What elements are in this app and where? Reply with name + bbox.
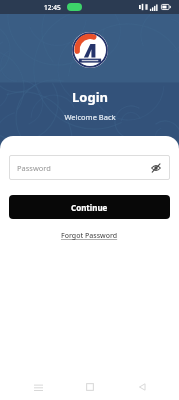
- staticText: Continue: [71, 202, 108, 213]
- staticText: 12:45: [44, 3, 61, 12]
- button[interactable]: Show password: [149, 161, 162, 174]
- button[interactable]: Recents: [12, 374, 64, 400]
- button[interactable]: Back: [116, 374, 168, 400]
- staticText: Login: [72, 88, 108, 106]
- button[interactable]: Forgot Password: [58, 228, 121, 244]
- button[interactable]: Continue: [9, 195, 170, 219]
- staticText: Forgot Password: [61, 231, 118, 241]
- staticText: Welcome Back: [64, 112, 116, 122]
- button[interactable]: Home: [64, 374, 116, 400]
- button[interactable]: Password: [9, 155, 170, 180]
- staticText: Password: [17, 163, 149, 173]
